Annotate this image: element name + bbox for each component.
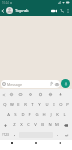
button[interactable]: E bbox=[15, 100, 22, 110]
button[interactable]: Period bbox=[54, 130, 61, 140]
staticText: R bbox=[24, 102, 27, 108]
button[interactable]: Back bbox=[0, 5, 6, 16]
staticText: H bbox=[42, 112, 46, 118]
button[interactable]: K bbox=[54, 110, 61, 120]
button[interactable]: Voice message bbox=[61, 79, 70, 88]
staticText: J bbox=[50, 112, 52, 118]
button[interactable]: F bbox=[26, 110, 33, 120]
staticText: L bbox=[63, 112, 66, 118]
staticText: Message bbox=[7, 82, 50, 87]
staticText: C bbox=[27, 122, 30, 128]
button[interactable]: Expand toolbar bbox=[0, 89, 7, 100]
staticText: X bbox=[20, 122, 23, 128]
button[interactable]: J bbox=[47, 110, 54, 120]
button[interactable]: Message bbox=[1, 80, 60, 88]
staticText: G bbox=[35, 112, 39, 118]
staticText: U bbox=[45, 102, 49, 108]
button[interactable]: Recent apps bbox=[0, 140, 24, 146]
button[interactable]: Z bbox=[11, 120, 18, 130]
staticText: Toprak bbox=[15, 8, 29, 14]
button[interactable]: O bbox=[57, 100, 64, 110]
button[interactable]: B bbox=[39, 120, 46, 130]
button[interactable]: U bbox=[43, 100, 50, 110]
button[interactable]: GIF bbox=[16, 89, 25, 100]
button[interactable]: Video call bbox=[49, 5, 58, 16]
staticText: ?123 bbox=[2, 133, 9, 137]
button[interactable]: C bbox=[25, 120, 32, 130]
button[interactable]: N bbox=[46, 120, 53, 130]
button[interactable]: Translate bbox=[45, 89, 55, 100]
staticText: Z bbox=[13, 122, 16, 128]
button[interactable]: T bbox=[29, 100, 36, 110]
button[interactable]: Backspace bbox=[60, 120, 72, 130]
button[interactable]: Mic bbox=[55, 89, 65, 100]
button[interactable]: Enter bbox=[61, 130, 72, 140]
button[interactable]: Shift bbox=[0, 120, 11, 130]
button[interactable]: More options bbox=[65, 5, 71, 16]
staticText: Q bbox=[3, 102, 7, 108]
staticText: 10:24 bbox=[2, 1, 9, 5]
button[interactable]: Toprak bbox=[6, 5, 49, 16]
staticText: W bbox=[10, 102, 14, 108]
button[interactable]: Q bbox=[1, 100, 8, 110]
staticText: T bbox=[31, 102, 34, 108]
button[interactable]: Stickers bbox=[7, 89, 16, 100]
staticText: K bbox=[56, 112, 59, 118]
staticText: A bbox=[7, 112, 10, 118]
staticText: M bbox=[55, 122, 59, 128]
button[interactable]: M bbox=[53, 120, 60, 130]
button[interactable]: D bbox=[19, 110, 26, 120]
button[interactable]: I bbox=[50, 100, 57, 110]
button[interactable]: Clipboard bbox=[35, 89, 45, 100]
button[interactable]: G bbox=[33, 110, 40, 120]
button[interactable]: Comma bbox=[11, 130, 18, 140]
button[interactable]: A bbox=[5, 110, 12, 120]
staticText: D bbox=[21, 112, 25, 118]
button[interactable]: Settings bbox=[25, 89, 35, 100]
staticText: I bbox=[53, 102, 55, 108]
staticText: O bbox=[59, 102, 63, 108]
staticText: E bbox=[17, 102, 20, 108]
button[interactable]: Voice call bbox=[58, 5, 65, 16]
staticText: P bbox=[66, 102, 69, 108]
button[interactable]: Symbols bbox=[0, 130, 11, 140]
button[interactable]: X bbox=[18, 120, 25, 130]
button[interactable]: H bbox=[40, 110, 47, 120]
button[interactable]: W bbox=[8, 100, 15, 110]
staticText: N bbox=[48, 122, 52, 128]
staticText: V bbox=[34, 122, 37, 128]
button[interactable]: V bbox=[32, 120, 39, 130]
button[interactable]: Back bbox=[48, 140, 72, 146]
staticText: F bbox=[28, 112, 31, 118]
button[interactable]: Y bbox=[36, 100, 43, 110]
button[interactable]: R bbox=[22, 100, 29, 110]
button[interactable]: Home bbox=[24, 140, 48, 146]
button[interactable]: P bbox=[64, 100, 71, 110]
staticText: B bbox=[41, 122, 44, 128]
button[interactable]: S bbox=[12, 110, 19, 120]
staticText: Y bbox=[38, 102, 41, 108]
staticText: S bbox=[14, 112, 17, 118]
button[interactable]: L bbox=[61, 110, 68, 120]
